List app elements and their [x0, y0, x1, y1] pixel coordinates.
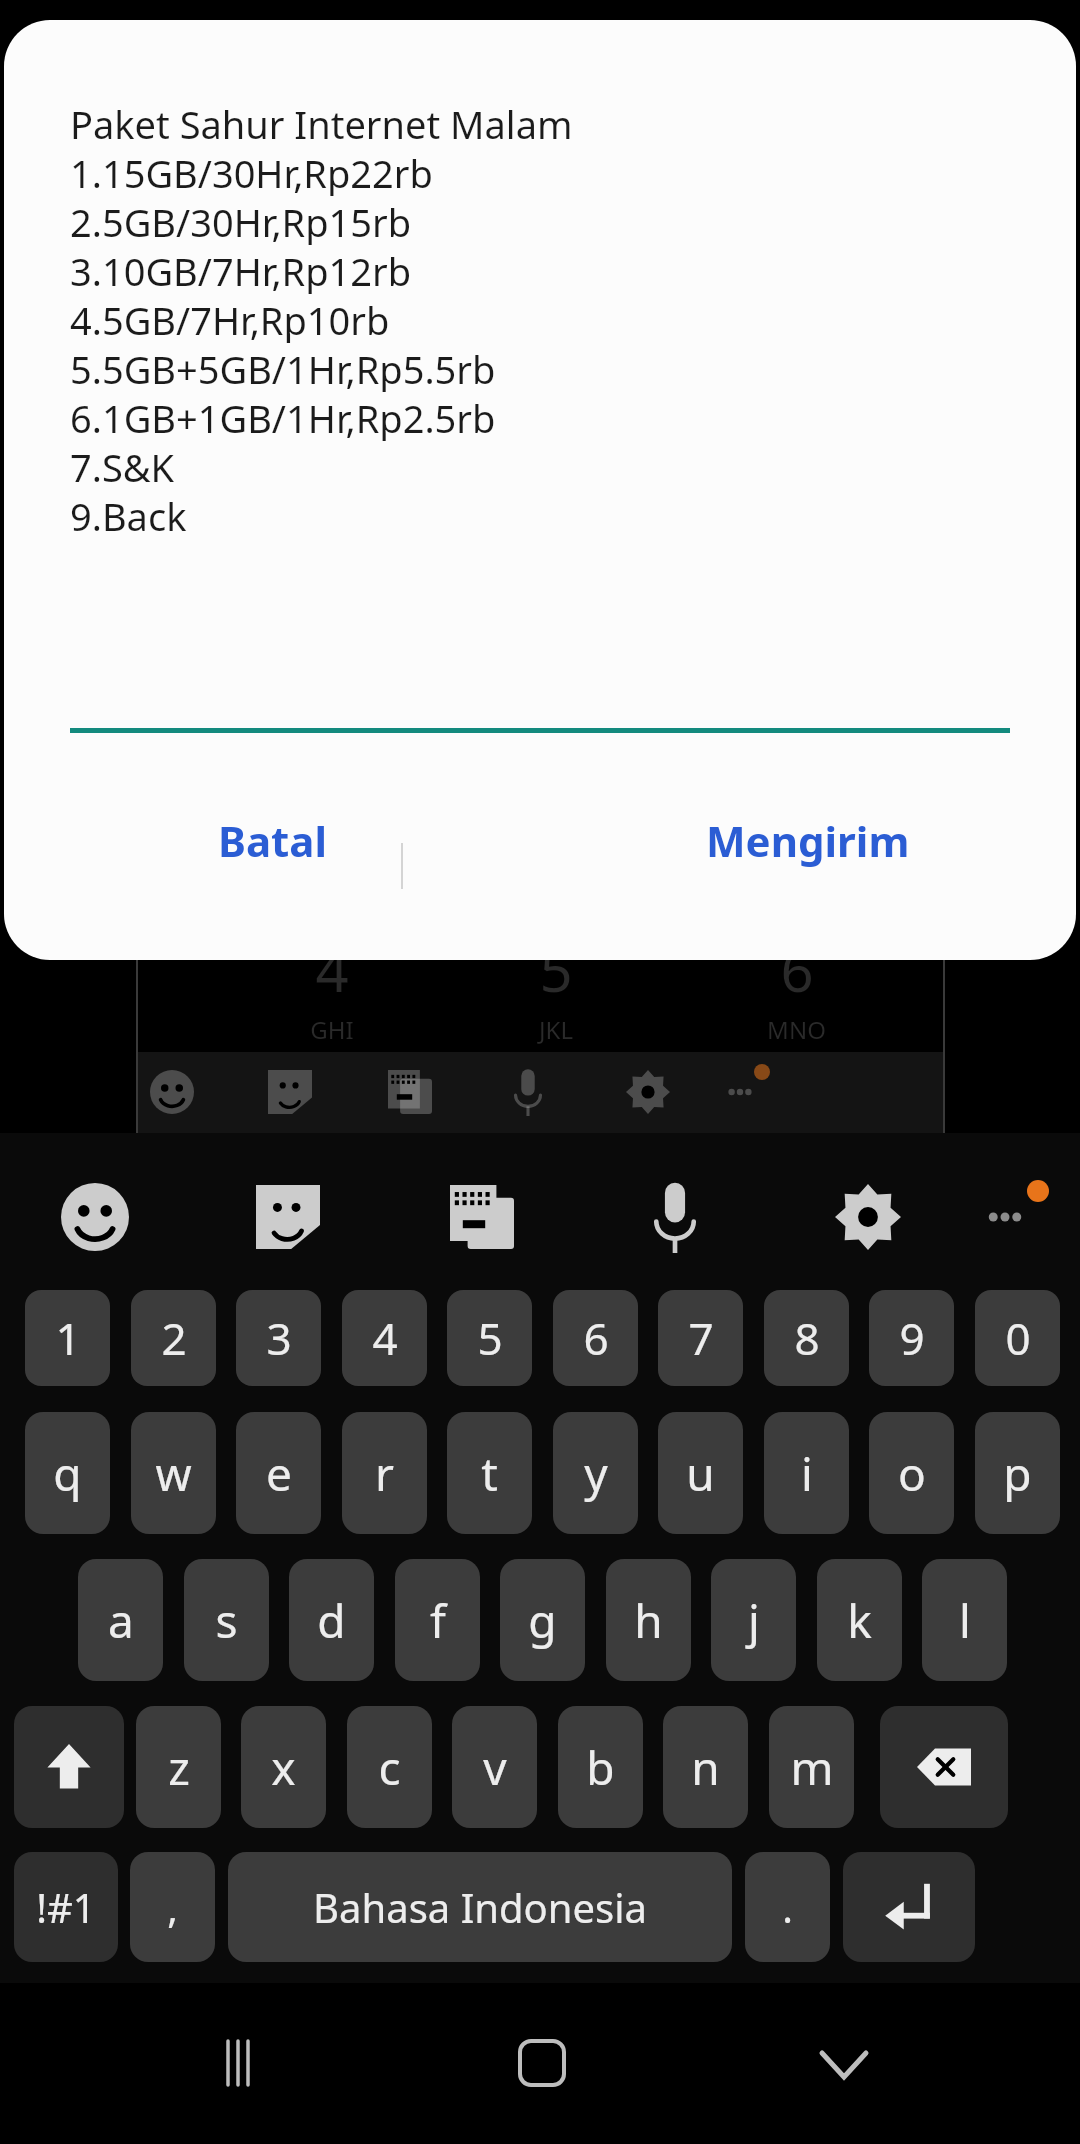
button[interactable]: q: [25, 1412, 110, 1534]
button[interactable]: Recent apps: [175, 2008, 285, 2118]
staticText: x: [271, 1736, 296, 1799]
button[interactable]: x: [241, 1706, 326, 1828]
button[interactable]: Shift: [14, 1706, 124, 1828]
button[interactable]: More options: [950, 1162, 1060, 1272]
staticText: Mengirim: [706, 812, 910, 869]
staticText: i: [801, 1442, 813, 1505]
button[interactable]: o: [869, 1412, 954, 1534]
staticText: 4.5GB/7Hr,Rp10rb: [70, 294, 390, 343]
button[interactable]: 6: [553, 1290, 638, 1386]
button[interactable]: a: [78, 1559, 163, 1681]
button[interactable]: h: [606, 1559, 691, 1681]
staticText: t: [481, 1442, 498, 1505]
staticText: k: [847, 1589, 872, 1652]
staticText: 7: [688, 1308, 714, 1368]
button[interactable]: p: [975, 1412, 1060, 1534]
staticText: 7.S&K: [70, 441, 175, 490]
staticText: j: [748, 1589, 760, 1652]
button[interactable]: 7: [658, 1290, 743, 1386]
staticText: !#1: [36, 1880, 96, 1934]
button[interactable]: r: [342, 1412, 427, 1534]
button[interactable]: i: [764, 1412, 849, 1534]
staticText: u: [686, 1442, 715, 1505]
staticText: d: [317, 1589, 346, 1652]
button[interactable]: Voice input: [620, 1162, 730, 1272]
button[interactable]: j: [711, 1559, 796, 1681]
staticText: 2.5GB/30Hr,Rp15rb: [70, 196, 412, 245]
button[interactable]: Hide keyboard: [789, 2008, 899, 2118]
button[interactable]: k: [817, 1559, 902, 1681]
staticText: z: [168, 1736, 190, 1799]
staticText: 5: [477, 1308, 503, 1368]
button[interactable]: l: [922, 1559, 1007, 1681]
button[interactable]: 3: [236, 1290, 321, 1386]
button[interactable]: b: [558, 1706, 643, 1828]
button[interactable]: 5: [447, 1290, 532, 1386]
button[interactable]: ,: [130, 1852, 215, 1962]
staticText: MNO: [767, 1013, 826, 1046]
button[interactable]: d: [289, 1559, 374, 1681]
staticText: f: [430, 1589, 446, 1652]
staticText: 4: [315, 930, 349, 1009]
staticText: y: [584, 1442, 608, 1505]
button[interactable]: 0: [975, 1290, 1060, 1386]
staticText: ,: [167, 1880, 178, 1934]
staticText: 9.Back: [70, 490, 187, 539]
staticText: q: [53, 1442, 82, 1505]
staticText: 6: [583, 1308, 609, 1368]
button[interactable]: Clipboard: [427, 1162, 537, 1272]
staticText: 1.15GB/30Hr,Rp22rb: [70, 147, 433, 196]
button[interactable]: e: [236, 1412, 321, 1534]
button[interactable]: g: [500, 1559, 585, 1681]
button[interactable]: u: [658, 1412, 743, 1534]
button[interactable]: m: [769, 1706, 854, 1828]
staticText: 9: [899, 1308, 925, 1368]
staticText: m: [790, 1736, 834, 1799]
button[interactable]: Enter: [843, 1852, 975, 1962]
button[interactable]: Settings: [813, 1162, 923, 1272]
staticText: 6: [780, 930, 814, 1009]
button[interactable]: 8: [764, 1290, 849, 1386]
button[interactable]: Home: [487, 2008, 597, 2118]
staticText: 1: [55, 1308, 81, 1368]
staticText: 5.5GB+5GB/1Hr,Rp5.5rb: [70, 343, 496, 392]
staticText: 0: [1005, 1308, 1031, 1368]
staticText: o: [898, 1442, 926, 1505]
staticText: Batal: [218, 812, 327, 869]
button[interactable]: Emoji: [40, 1162, 150, 1272]
button[interactable]: 4: [342, 1290, 427, 1386]
button[interactable]: c: [347, 1706, 432, 1828]
button[interactable]: 1: [25, 1290, 110, 1386]
button[interactable]: .: [745, 1852, 830, 1962]
button[interactable]: s: [184, 1559, 269, 1681]
button[interactable]: Backspace: [880, 1706, 1008, 1828]
staticText: 4: [372, 1308, 398, 1368]
staticText: Paket Sahur Internet Malam: [70, 98, 573, 147]
staticText: r: [375, 1442, 394, 1505]
button[interactable]: 9: [869, 1290, 954, 1386]
staticText: 3: [266, 1308, 292, 1368]
button[interactable]: n: [663, 1706, 748, 1828]
button[interactable]: t: [447, 1412, 532, 1534]
staticText: v: [483, 1736, 507, 1799]
staticText: p: [1003, 1442, 1032, 1505]
button[interactable]: Stickers: [233, 1162, 343, 1272]
staticText: w: [155, 1442, 192, 1505]
button[interactable]: Mengirim: [540, 790, 1076, 940]
staticText: a: [108, 1589, 134, 1652]
staticText: g: [528, 1589, 557, 1652]
button[interactable]: !#1: [14, 1852, 118, 1962]
button[interactable]: Batal: [4, 790, 540, 940]
button[interactable]: z: [136, 1706, 221, 1828]
staticText: c: [378, 1736, 401, 1799]
button[interactable]: y: [553, 1412, 638, 1534]
button[interactable]: Bahasa Indonesia: [228, 1852, 732, 1962]
staticText: h: [634, 1589, 663, 1652]
button[interactable]: 2: [131, 1290, 216, 1386]
staticText: b: [586, 1736, 615, 1799]
staticText: GHI: [310, 1013, 354, 1046]
button[interactable]: f: [395, 1559, 480, 1681]
button[interactable]: w: [131, 1412, 216, 1534]
staticText: 2: [161, 1308, 187, 1368]
button[interactable]: v: [452, 1706, 537, 1828]
